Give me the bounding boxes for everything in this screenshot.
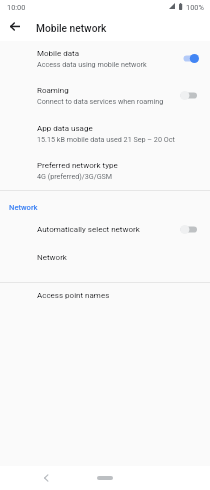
staticText: 10:00 (7, 3, 26, 12)
button[interactable]: Automatically select network (0, 216, 210, 243)
staticText: Access data using mobile network (37, 60, 147, 68)
staticText: Connect to data services when roaming (37, 97, 164, 105)
button[interactable]: Mobile data (0, 40, 210, 78)
button[interactable]: Back (0, 14, 28, 41)
staticText: 4G (preferred)/3G/GSM (37, 172, 113, 180)
button[interactable]: Network (0, 244, 210, 271)
staticText: Automatically select network (37, 225, 140, 234)
button[interactable]: Home (95, 472, 115, 484)
staticText: Preferred network type (37, 161, 118, 170)
staticText: Network (37, 253, 67, 262)
button[interactable]: Access point names (0, 282, 210, 309)
staticText: Mobile data (37, 49, 79, 58)
button[interactable]: App data usage (0, 115, 210, 153)
staticText: 100% (186, 3, 204, 12)
button[interactable]: Preferred network type (0, 152, 210, 190)
staticText: Network (9, 203, 38, 212)
staticText: App data usage (37, 124, 93, 133)
button[interactable]: Roaming (0, 77, 210, 115)
staticText: Roaming (37, 86, 69, 95)
staticText: Access point names (37, 291, 110, 300)
staticText: Mobile network (36, 23, 107, 35)
staticText: 15.15 kB mobile data used 21 Sep – 20 Oc… (37, 135, 175, 143)
button[interactable]: Back (36, 466, 56, 490)
